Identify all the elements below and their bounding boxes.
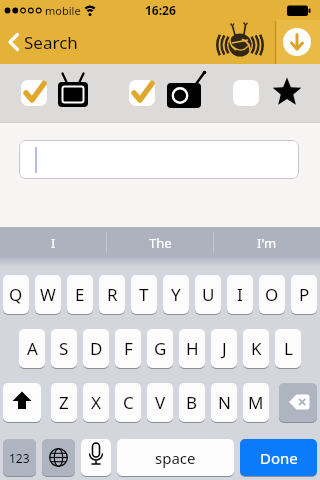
staticText: I [51,234,56,252]
staticText: P [299,283,310,306]
staticText: 123 [9,450,30,466]
button[interactable]: V [147,383,173,422]
staticText: O [265,283,279,306]
staticText: D [90,337,103,360]
staticText: 16:26 [145,2,176,18]
staticText: K [251,337,262,360]
staticText: M [248,391,264,414]
staticText: R [107,283,118,306]
button[interactable]: E [67,275,93,314]
button[interactable]: M [243,383,269,422]
button[interactable]: N [211,383,237,422]
staticText: J [222,337,227,360]
button[interactable]: F [115,329,141,368]
staticText: space [155,448,196,468]
button[interactable]: I [227,275,253,314]
button[interactable]: G [147,329,173,368]
button[interactable] [21,80,47,106]
button[interactable]: Y [163,275,189,314]
button[interactable]: Q [3,275,29,314]
button[interactable]: H [179,329,205,368]
button[interactable]: The [107,227,213,258]
staticText: Done [260,448,298,468]
button[interactable]: U [195,275,221,314]
button[interactable]: Z [51,383,77,422]
staticText: L [284,337,293,360]
staticText: N [218,391,231,414]
staticText: T [139,283,149,306]
button[interactable]: I'm [214,227,320,258]
button[interactable]: D [83,329,109,368]
button[interactable]: S [51,329,77,368]
staticText: X [91,391,101,414]
staticText: E [75,283,85,306]
staticText: U [202,283,215,306]
staticText: H [186,337,199,360]
button[interactable] [3,383,41,422]
button[interactable] [276,20,320,64]
staticText: The [149,234,172,252]
staticText: A [27,337,38,360]
button[interactable]: J [211,329,237,368]
staticText: I'm [257,234,277,252]
button[interactable]: 123 [3,439,36,476]
staticText: S [59,337,69,360]
button[interactable]: K [243,329,269,368]
button[interactable] [279,383,317,422]
staticText: V [155,391,166,414]
button[interactable]: X [83,383,109,422]
button[interactable]: I [0,227,106,258]
button[interactable]: O [259,275,285,314]
button[interactable] [233,80,259,106]
button[interactable] [129,80,155,106]
staticText: W [40,283,56,306]
staticText: F [124,337,133,360]
staticText: I [237,283,243,306]
staticText: B [186,391,198,414]
staticText: Y [171,283,181,306]
button[interactable]: B [179,383,205,422]
button[interactable]: A [19,329,45,368]
staticText: Search [24,31,78,54]
button[interactable] [19,140,299,179]
button[interactable] [81,439,111,476]
staticText: Q [9,283,23,306]
staticText: Z [59,391,69,414]
staticText: C [123,391,134,414]
staticText: mobile [45,3,81,18]
button[interactable]: T [131,275,157,314]
button[interactable]: C [115,383,141,422]
button[interactable]: W [35,275,61,314]
button[interactable]: Done [240,439,317,476]
button[interactable]: space [117,439,234,476]
button[interactable]: P [291,275,317,314]
button[interactable] [42,439,75,476]
button[interactable] [0,20,90,64]
button[interactable]: L [275,329,301,368]
button[interactable]: R [99,275,125,314]
staticText: G [154,337,167,360]
